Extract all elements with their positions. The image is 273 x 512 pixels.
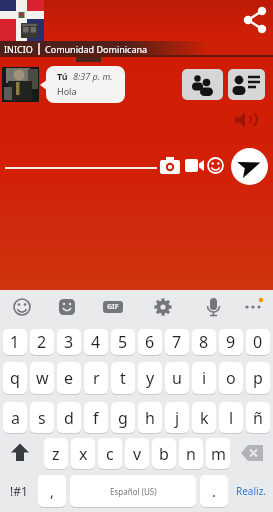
button[interactable]: i [192, 362, 216, 394]
staticText: t [120, 367, 126, 389]
button[interactable]: e [57, 362, 81, 394]
staticText: . [212, 482, 216, 501]
staticText: k [200, 407, 209, 429]
staticText: g [118, 407, 128, 429]
button[interactable]: 9 [219, 329, 243, 355]
button[interactable]: !#1 [2, 475, 35, 507]
staticText: u [172, 367, 182, 389]
button[interactable]: INICIO [4, 43, 33, 55]
button[interactable]: 2 [30, 329, 54, 355]
button[interactable]: GIF [103, 301, 123, 313]
staticText: j [175, 407, 180, 429]
button[interactable]: o [219, 362, 243, 394]
button[interactable]: ñ [246, 402, 270, 433]
button[interactable]: Comunidad Dominicana [45, 43, 148, 55]
staticText: h [145, 407, 155, 429]
button[interactable]: Realiz. [232, 475, 271, 507]
button[interactable]: 7 [165, 329, 189, 355]
button[interactable]: a [3, 402, 27, 433]
button[interactable] [160, 157, 181, 174]
button[interactable]: 3 [57, 329, 81, 355]
button[interactable]: . [200, 475, 228, 507]
staticText: 8 [199, 331, 209, 353]
button[interactable] [228, 69, 265, 100]
button[interactable]: l [219, 402, 243, 433]
button[interactable]: 6 [138, 329, 162, 355]
staticText: n [186, 443, 196, 465]
button[interactable]: b [152, 438, 176, 469]
button[interactable]: n [179, 438, 203, 469]
button[interactable]: u [165, 362, 189, 394]
button[interactable] [70, 475, 196, 507]
button[interactable]: d [57, 402, 81, 433]
button[interactable]: m [206, 438, 230, 469]
staticText: Tú [57, 70, 68, 82]
staticText: y [146, 367, 155, 389]
staticText: 3 [64, 331, 74, 353]
button[interactable] [182, 69, 223, 100]
staticText: e [64, 367, 74, 389]
button[interactable]: h [138, 402, 162, 433]
button[interactable] [235, 437, 271, 469]
staticText: !#1 [10, 483, 28, 499]
staticText: s [38, 407, 46, 429]
button[interactable] [231, 148, 268, 185]
staticText: z [52, 443, 60, 465]
button[interactable]: x [71, 438, 95, 469]
staticText: INICIO [4, 43, 33, 55]
staticText: Español (US) [110, 486, 157, 497]
staticText: i [202, 367, 207, 389]
staticText: 5 [118, 331, 128, 353]
staticText: d [64, 407, 74, 429]
button[interactable]: c [98, 438, 122, 469]
button[interactable] [185, 159, 205, 173]
staticText: Comunidad Dominicana [45, 43, 148, 55]
button[interactable]: g [111, 402, 135, 433]
staticText: v [133, 443, 142, 465]
button[interactable]: r [84, 362, 108, 394]
button[interactable]: Tú [46, 66, 125, 103]
button[interactable] [2, 437, 38, 469]
staticText: 4 [91, 331, 101, 353]
staticText: x [79, 443, 88, 465]
button[interactable]: , [38, 475, 66, 507]
button[interactable] [235, 111, 256, 129]
staticText: c [106, 443, 114, 465]
staticText: Hola [57, 85, 77, 97]
button[interactable]: k [192, 402, 216, 433]
button[interactable] [240, 3, 272, 35]
button[interactable]: p [246, 362, 270, 394]
button[interactable]: z [44, 438, 68, 469]
staticText: Realiz. [236, 484, 267, 498]
staticText: , [50, 482, 54, 501]
staticText: b [159, 443, 169, 465]
button[interactable]: 8 [192, 329, 216, 355]
button[interactable]: 5 [111, 329, 135, 355]
button[interactable]: j [165, 402, 189, 433]
button[interactable]: f [84, 402, 108, 433]
staticText: 7 [172, 331, 182, 353]
staticText: q [10, 367, 20, 389]
staticText: 0 [253, 331, 263, 353]
staticText: 6 [145, 331, 155, 353]
staticText: 1 [10, 331, 20, 353]
button[interactable]: q [3, 362, 27, 394]
staticText: w [36, 367, 49, 389]
staticText: GIF [107, 302, 119, 312]
button[interactable]: y [138, 362, 162, 394]
staticText: m [211, 443, 226, 465]
button[interactable]: t [111, 362, 135, 394]
staticText: ñ [253, 407, 263, 429]
button[interactable]: 4 [84, 329, 108, 355]
button[interactable]: w [30, 362, 54, 394]
staticText: o [226, 367, 236, 389]
staticText: 9 [226, 331, 236, 353]
button[interactable] [207, 157, 224, 174]
button[interactable]: 0 [246, 329, 270, 355]
staticText: r [93, 367, 100, 389]
button[interactable]: s [30, 402, 54, 433]
staticText: l [229, 407, 234, 429]
button[interactable]: v [125, 438, 149, 469]
staticText: 8:37 p. m. [73, 70, 113, 82]
button[interactable]: 1 [3, 329, 27, 355]
